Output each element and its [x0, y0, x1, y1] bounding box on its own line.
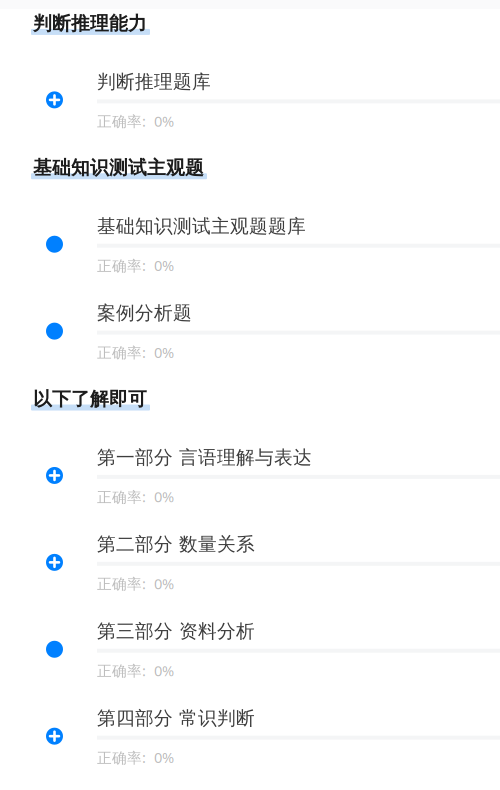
staticText: 正确率: 0%	[97, 661, 174, 680]
button[interactable]: 第一部分 言语理解与表达	[0, 432, 500, 519]
staticText: 正确率: 0%	[97, 487, 174, 506]
staticText: 正确率: 0%	[97, 343, 174, 362]
staticText: 正确率: 0%	[97, 256, 174, 275]
staticText: 正确率: 0%	[97, 748, 174, 767]
staticText: 正确率: 0%	[97, 111, 174, 131]
staticText: 第三部分 资料分析	[97, 620, 255, 643]
button[interactable]: 第二部分 数量关系	[0, 519, 500, 606]
staticText: 基础知识测试主观题	[33, 156, 204, 179]
staticText: 第二部分 数量关系	[97, 533, 255, 556]
button[interactable]: 第三部分 资料分析	[0, 606, 500, 693]
button[interactable]: 基础知识测试主观题题库	[0, 201, 500, 288]
staticText: 第四部分 常识判断	[97, 707, 255, 730]
staticText: 以下了解即可	[33, 388, 147, 410]
staticText: 判断推理题库	[97, 70, 211, 93]
staticText: 案例分析题	[97, 302, 192, 325]
staticText: 判断推理能力	[33, 12, 147, 35]
staticText: 基础知识测试主观题题库	[97, 215, 306, 238]
button[interactable]: 判断推理题库	[0, 56, 500, 143]
staticText: 第一部分 言语理解与表达	[97, 446, 312, 469]
button[interactable]: 案例分析题	[0, 288, 500, 375]
button[interactable]: 第四部分 常识判断	[0, 693, 500, 780]
staticText: 正确率: 0%	[97, 574, 174, 593]
